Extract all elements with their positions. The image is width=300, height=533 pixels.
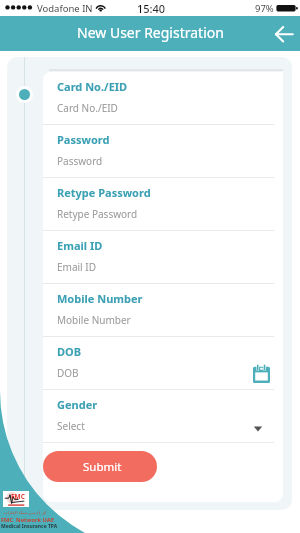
staticText: Password xyxy=(57,154,103,168)
button[interactable]: Email ID xyxy=(43,231,283,284)
staticText: DOB xyxy=(57,366,79,380)
staticText: Mobile Number xyxy=(57,313,131,327)
button[interactable]: Back xyxy=(270,20,298,48)
button[interactable]: Submit xyxy=(43,451,157,482)
button[interactable]: Card No./EID xyxy=(43,72,283,125)
staticText: Mobile Number xyxy=(57,291,143,306)
staticText: Select xyxy=(57,419,85,433)
button[interactable]: Open dropdown xyxy=(252,423,264,435)
staticText: New User Registration xyxy=(77,23,224,42)
staticText: Password xyxy=(57,132,110,147)
button[interactable]: Retype Password xyxy=(43,178,283,231)
button[interactable]: DOB xyxy=(43,337,283,390)
button[interactable]: Password xyxy=(43,125,283,178)
staticText: Submit xyxy=(83,459,122,475)
staticText: Email ID xyxy=(57,238,103,253)
staticText: FMC xyxy=(11,492,25,501)
staticText: أف إم سي شبكة الإمارات xyxy=(4,510,47,515)
staticText: 97% xyxy=(255,2,274,15)
staticText: Retype Password xyxy=(57,185,151,200)
staticText: FMC Network UAE xyxy=(1,516,54,524)
staticText: DOB xyxy=(57,344,82,359)
staticText: Card No./EID xyxy=(57,101,118,115)
staticText: 15:40 xyxy=(137,1,166,16)
staticText: Email ID xyxy=(57,260,96,274)
staticText: Retype Password xyxy=(57,207,138,221)
staticText: Card No./EID xyxy=(57,79,128,94)
button[interactable]: Pick date xyxy=(253,364,270,383)
staticText: Vodafone IN xyxy=(37,2,93,15)
button[interactable]: Gender xyxy=(43,390,283,443)
staticText: Gender xyxy=(57,397,98,412)
button[interactable]: Mobile Number xyxy=(43,284,283,337)
staticText: Medical Insurance TPA xyxy=(1,523,58,530)
